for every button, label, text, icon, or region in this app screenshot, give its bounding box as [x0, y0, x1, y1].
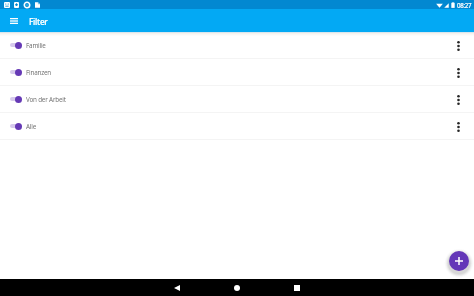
button[interactable]: Home — [226, 279, 248, 296]
button[interactable]: More options — [448, 86, 468, 112]
button[interactable]: Alle — [0, 113, 474, 139]
button[interactable]: More options — [448, 59, 468, 85]
staticText: Finanzen — [26, 68, 52, 77]
staticText: Von der Arbeit — [26, 95, 66, 104]
button[interactable]: Back — [166, 279, 188, 296]
staticText: Filter — [29, 16, 48, 27]
staticText: Familie — [26, 41, 46, 50]
staticText: Alle — [26, 122, 37, 131]
button[interactable]: More options — [448, 113, 468, 139]
staticText: 08:27 — [457, 1, 472, 9]
button[interactable]: Add filter — [449, 251, 469, 271]
button[interactable]: Finanzen — [0, 59, 474, 85]
button[interactable]: Von der Arbeit — [0, 86, 474, 112]
button[interactable]: More options — [448, 32, 468, 58]
button[interactable]: Recent apps — [286, 279, 308, 296]
button[interactable]: Open navigation drawer — [0, 9, 23, 32]
button[interactable]: Familie — [0, 32, 474, 58]
